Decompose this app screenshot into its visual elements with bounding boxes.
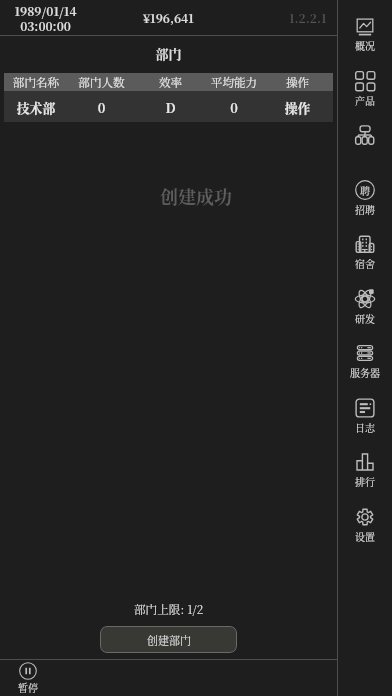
staticText: 概况 <box>355 38 375 52</box>
staticText: 排行 <box>355 474 375 488</box>
button[interactable]: 创建部门 <box>100 626 237 653</box>
staticText: 技术部 <box>4 98 68 116</box>
staticText: 创建成功 <box>160 183 232 209</box>
staticText: 暂停 <box>18 680 38 694</box>
button[interactable]: 暂停 <box>18 662 38 694</box>
button[interactable]: 产品 <box>338 55 392 109</box>
staticText: 聘 <box>360 183 370 197</box>
staticText: 1.2.2.1 <box>289 9 327 26</box>
button[interactable]: 日志 <box>338 382 392 436</box>
staticText: 设置 <box>355 529 375 543</box>
button[interactable]: 部门 <box>338 109 392 163</box>
staticText: 部门上限: 1/2 <box>134 601 204 618</box>
staticText: 宿舍 <box>355 256 375 270</box>
button[interactable]: 招聘 <box>338 164 392 218</box>
staticText: 平均能力 <box>206 74 262 91</box>
button[interactable]: 宿舍 <box>338 218 392 272</box>
staticText: 效率 <box>135 74 206 91</box>
staticText: 创建部门 <box>147 632 191 648</box>
staticText: 1989/01/14 03:00:00 <box>14 2 77 34</box>
staticText: 部门人数 <box>68 74 135 91</box>
staticText: 0 <box>68 98 135 116</box>
staticText: 部门 <box>0 44 337 63</box>
staticText: 操作 <box>262 74 333 91</box>
button[interactable]: 研发 <box>338 273 392 327</box>
staticText: 0 <box>206 98 262 116</box>
staticText: ¥196,641 <box>143 9 194 26</box>
button[interactable]: 技术部 <box>4 91 333 122</box>
staticText: 招聘 <box>355 202 375 216</box>
button[interactable]: 设置 <box>338 491 392 545</box>
button[interactable]: 概况 <box>338 0 392 54</box>
staticText: 操作 <box>262 98 333 116</box>
button[interactable]: 服务器 <box>338 327 392 381</box>
staticText: 产品 <box>355 93 375 107</box>
staticText: D <box>135 98 206 116</box>
staticText: 部门名称 <box>4 74 68 91</box>
staticText: 研发 <box>355 311 375 325</box>
button[interactable]: 排行 <box>338 436 392 490</box>
staticText: 日志 <box>355 420 375 434</box>
staticText: 服务器 <box>350 365 380 379</box>
